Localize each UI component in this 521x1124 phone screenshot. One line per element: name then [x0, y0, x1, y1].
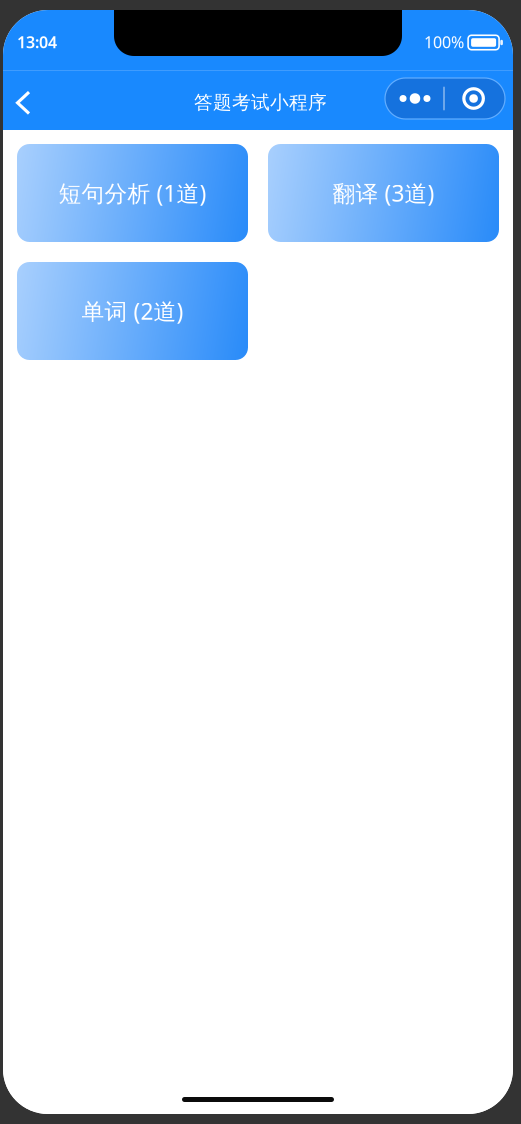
- staticText: 答题考试小程序: [194, 91, 327, 114]
- staticText: 100%: [424, 31, 464, 53]
- button[interactable]: 翻译 (3道): [268, 144, 499, 242]
- staticText: 单词 (2道): [81, 296, 183, 326]
- staticText: 翻译 (3道): [332, 178, 434, 208]
- button[interactable]: Back: [3, 70, 49, 130]
- button[interactable]: 短句分析 (1道): [17, 144, 248, 242]
- staticText: 短句分析 (1道): [58, 178, 206, 208]
- staticText: 13:04: [17, 31, 57, 53]
- button[interactable]: 单词 (2道): [17, 262, 248, 360]
- button[interactable]: Mini program menu: [385, 78, 505, 119]
